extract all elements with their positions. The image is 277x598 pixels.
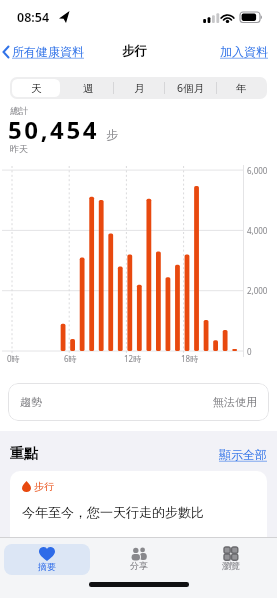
staticText: 步行 (34, 480, 54, 493)
button[interactable]: 分享 (93, 541, 185, 577)
staticText: 年 (236, 82, 247, 95)
staticText: 步 (106, 127, 118, 142)
staticText: 重點 (10, 445, 38, 463)
staticText: 摘要 (38, 561, 56, 572)
staticText: 所有健康資料 (12, 44, 84, 59)
button[interactable]: 月 (114, 77, 165, 99)
staticText: 0時 (7, 353, 20, 364)
button[interactable]: 年 (216, 77, 267, 99)
staticText: 步行 (122, 43, 147, 59)
button[interactable]: 摘要 (4, 544, 90, 575)
staticText: 月 (134, 82, 145, 95)
staticText: 18時 (181, 353, 199, 364)
staticText: 今年至今，您一天行走的步數比 (22, 504, 204, 520)
staticText: 08:54 (17, 9, 50, 26)
staticText: 4,000 (247, 225, 268, 236)
staticText: 週 (83, 82, 94, 95)
button[interactable]: 週 (62, 77, 114, 99)
button[interactable]: 所有健康資料 (0, 44, 84, 59)
button[interactable]: 趨勢 (8, 383, 269, 421)
staticText: 趨勢 (20, 395, 42, 409)
staticText: 分享 (130, 560, 148, 571)
staticText: 昨天 (10, 143, 28, 154)
staticText: 6個月 (177, 81, 205, 95)
staticText: 6時 (64, 353, 77, 364)
button[interactable]: 步行 (10, 471, 267, 598)
staticText: 6,000 (247, 165, 268, 176)
staticText: 天 (31, 82, 42, 95)
staticText: 瀏覽 (222, 560, 240, 571)
staticText: 總計 (10, 105, 28, 116)
staticText: 12時 (124, 353, 142, 364)
button[interactable]: 顯示全部 (219, 447, 267, 462)
button[interactable]: 瀏覽 (185, 541, 277, 577)
button[interactable]: 加入資料 (220, 44, 268, 59)
staticText: 無法使用 (213, 395, 257, 409)
staticText: 50,454 (8, 113, 100, 146)
button[interactable]: 6個月 (165, 77, 216, 99)
staticText: 2,000 (247, 285, 268, 296)
staticText: 0 (247, 346, 252, 357)
button[interactable]: 天 (10, 77, 62, 99)
